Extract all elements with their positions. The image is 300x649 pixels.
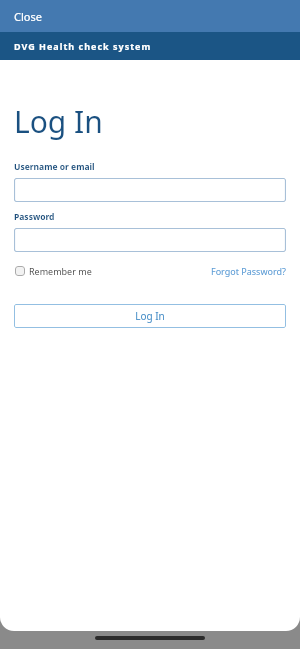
staticText: Close [14, 9, 42, 24]
staticText: Forgot Password? [211, 265, 286, 277]
staticText: Log In [135, 309, 165, 323]
button[interactable] [14, 228, 286, 252]
button[interactable]: Forgot Password? [205, 263, 286, 279]
button[interactable] [14, 178, 286, 202]
button[interactable]: Close [0, 5, 52, 28]
staticText: Username or email [14, 161, 95, 173]
staticText: Log In [14, 101, 103, 142]
staticText: Remember me [29, 265, 92, 277]
button[interactable]: Remember me [14, 263, 98, 279]
staticText: DVG Health check system [14, 40, 152, 52]
staticText: Password [14, 211, 55, 223]
button[interactable]: Log In [14, 304, 286, 328]
other: Home indicator [95, 636, 205, 640]
